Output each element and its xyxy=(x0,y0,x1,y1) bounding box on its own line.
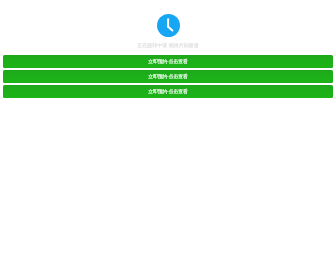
staticText: 正在跳转中请 稍候片刻谢谢 xyxy=(137,42,199,49)
button[interactable]: 立即预约·点击查看 xyxy=(3,85,333,98)
staticText: 立即预约·点击查看 xyxy=(148,88,188,95)
staticText: 立即预约·点击查看 xyxy=(148,73,188,80)
button[interactable]: 立即预约·点击查看 xyxy=(3,55,333,68)
button[interactable]: 立即预约·点击查看 xyxy=(3,70,333,83)
other: Loading clock xyxy=(157,14,180,37)
staticText: 立即预约·点击查看 xyxy=(148,58,188,65)
